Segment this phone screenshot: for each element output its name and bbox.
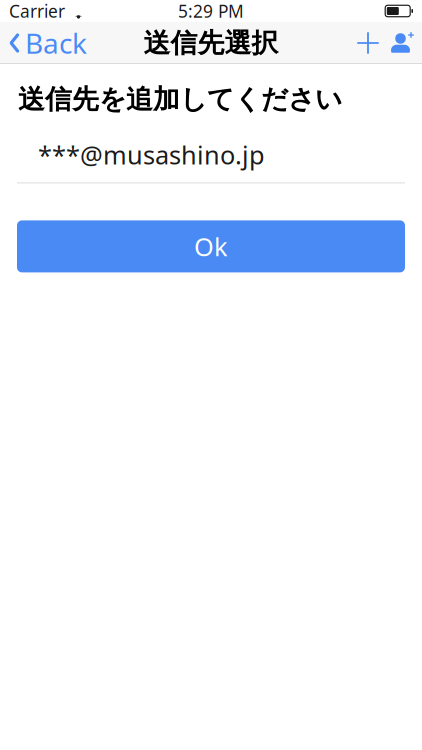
button[interactable]: Ok bbox=[17, 220, 405, 272]
button[interactable]: Add bbox=[351, 26, 385, 60]
staticText: 5:29 PM bbox=[178, 0, 244, 22]
staticText: Carrier bbox=[9, 0, 65, 22]
button[interactable]: Add contact bbox=[385, 26, 422, 60]
staticText: ***@musashino.jp bbox=[38, 138, 265, 171]
staticText: Back bbox=[25, 24, 87, 62]
staticText: Ok bbox=[194, 230, 228, 263]
staticText: 送信先を追加してください bbox=[18, 83, 342, 116]
button[interactable]: Back bbox=[0, 18, 87, 68]
staticText: 送信先選択 bbox=[143, 27, 278, 59]
